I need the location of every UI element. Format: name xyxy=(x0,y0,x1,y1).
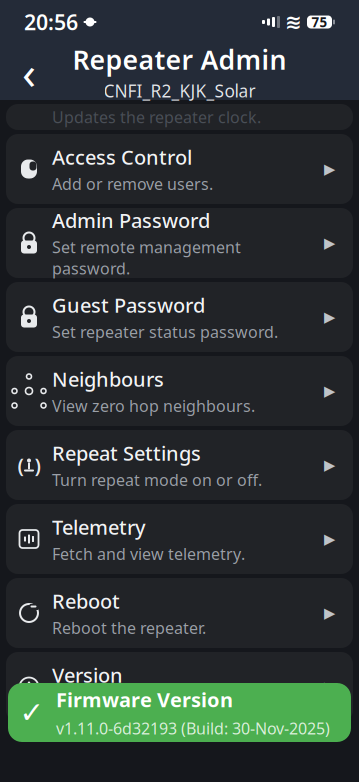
staticText: Repeat Settings xyxy=(52,440,201,466)
button[interactable]: Neighbours xyxy=(6,356,353,426)
staticText: CNFI_R2_KJK_Solar xyxy=(103,79,255,102)
staticText: ▶ xyxy=(324,383,335,399)
staticText: ‹ xyxy=(22,42,36,102)
staticText: 75 xyxy=(311,13,327,31)
button[interactable]: Back xyxy=(6,49,52,95)
staticText: Firmware Version xyxy=(56,686,233,713)
staticText: Add or remove users. xyxy=(52,173,213,194)
staticText: Set repeater status password. xyxy=(52,321,278,342)
staticText: Fetch and view telemetry. xyxy=(52,543,245,564)
staticText: Version xyxy=(52,662,123,688)
staticText: Admin Password xyxy=(52,207,210,234)
staticText: Turn repeat mode on or off. xyxy=(52,469,262,490)
staticText: Reboot the repeater. xyxy=(52,617,206,638)
button[interactable]: ( xyxy=(6,430,353,500)
staticText: Reboot xyxy=(52,588,120,614)
staticText: ▶ xyxy=(324,605,335,621)
staticText: Updates the repeater clock. xyxy=(52,106,261,128)
staticText: Set remote management password. xyxy=(52,236,241,279)
button[interactable]: Admin Password xyxy=(6,208,353,278)
staticText: ▶ xyxy=(324,235,335,251)
staticText: ( xyxy=(17,452,23,478)
button[interactable]: Version xyxy=(6,652,353,722)
staticText: ) xyxy=(34,452,40,478)
staticText: View zero hop neighbours. xyxy=(52,395,255,416)
staticText: ▶ xyxy=(324,309,335,325)
staticText: ✓ xyxy=(19,696,44,729)
button[interactable]: Telemetry xyxy=(6,504,353,574)
staticText: 20:56 xyxy=(24,8,78,36)
staticText: Get repeater firmware version. xyxy=(52,691,285,712)
staticText: Neighbours xyxy=(52,366,164,392)
staticText: Telemetry xyxy=(52,514,146,540)
button[interactable]: Guest Password xyxy=(6,282,353,352)
staticText: ▶ xyxy=(324,531,335,547)
staticText: v1.11.0-6d32193 (Build: 30-Nov-2025) xyxy=(56,718,330,739)
button[interactable]: Access Control xyxy=(6,134,353,204)
staticText: ▶ xyxy=(324,161,335,177)
staticText: Access Control xyxy=(52,144,192,170)
button[interactable]: Reboot xyxy=(6,578,353,648)
staticText: Repeater Admin xyxy=(72,42,286,77)
staticText: ▶ xyxy=(324,679,335,695)
staticText: Guest Password xyxy=(52,292,205,318)
staticText: ≋ xyxy=(285,11,302,33)
staticText: ▶ xyxy=(324,457,335,473)
